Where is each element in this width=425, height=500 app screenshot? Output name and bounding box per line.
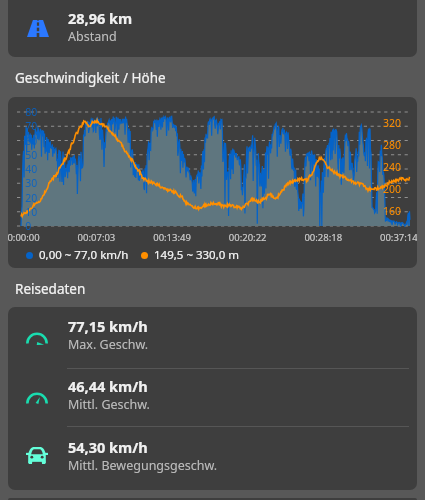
staticText: Mittl. Geschw. — [68, 396, 150, 413]
button[interactable]: 28,96 km — [8, 0, 417, 57]
staticText: Reisedaten — [15, 280, 86, 298]
staticText: 149,5 ~ 330,0 m — [154, 247, 240, 263]
staticText: 28,96 km — [68, 8, 133, 28]
button[interactable]: 46,44 km/h — [8, 369, 417, 426]
button[interactable]: 54,30 km/h — [8, 427, 417, 490]
staticText: 46,44 km/h — [68, 376, 148, 396]
staticText: 0,00 ~ 77,0 km/h — [39, 247, 129, 263]
button[interactable]: 77,15 km/h — [8, 307, 417, 368]
staticText: Geschwindigkeit / Höhe — [15, 69, 166, 87]
staticText: Max. Geschw. — [68, 336, 149, 353]
staticText: 54,30 km/h — [68, 437, 148, 457]
staticText: 77,15 km/h — [68, 316, 148, 336]
staticText: Abstand — [68, 28, 117, 45]
staticText: Mittl. Bewegungsgeschw. — [68, 457, 218, 474]
